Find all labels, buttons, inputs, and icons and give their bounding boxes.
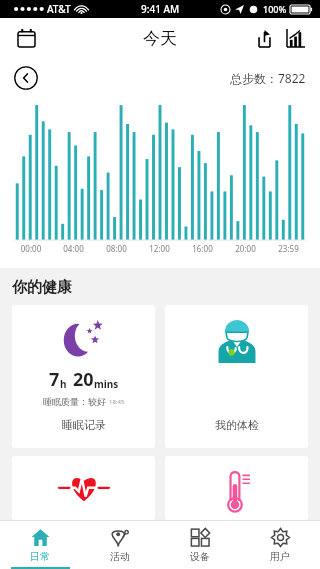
staticText: 睡眠质量：较好 <box>43 396 106 407</box>
button[interactable]: 用户 <box>240 521 320 569</box>
button[interactable]: 活动 <box>80 521 160 569</box>
staticText: 04:00 <box>52 243 95 254</box>
staticText: 活动 <box>110 550 130 563</box>
staticText: 16:00 <box>181 243 224 254</box>
staticText: 20 <box>73 367 94 392</box>
staticText: 00:00 <box>10 243 52 254</box>
staticText: 08:00 <box>95 243 138 254</box>
button[interactable]: 我的体检 <box>165 305 308 448</box>
staticText: 你的健康 <box>12 278 72 297</box>
staticText: AT&T <box>47 2 71 16</box>
staticText: 100% <box>263 3 287 15</box>
staticText: 睡眠记录 <box>62 418 106 432</box>
staticText: 7 <box>49 367 60 392</box>
staticText: 用户 <box>270 550 290 563</box>
button[interactable]: Statistics <box>280 22 312 54</box>
staticText: mins <box>94 377 119 391</box>
staticText: 总步数：7822 <box>230 70 306 86</box>
staticText: 今天 <box>143 28 177 49</box>
button[interactable]: Back <box>14 66 38 90</box>
button[interactable]: Share <box>248 22 280 54</box>
staticText: 我的体检 <box>215 418 259 432</box>
button[interactable]: 97-110 <box>165 456 308 520</box>
staticText: 23:59 <box>267 243 310 254</box>
staticText: 12:00 <box>138 243 181 254</box>
staticText: 9:41 AM <box>141 2 180 16</box>
staticText: 18:45 <box>109 398 125 406</box>
button[interactable]: 设备 <box>160 521 240 569</box>
button[interactable]: 7 <box>12 305 155 448</box>
button[interactable]: Calendar <box>10 22 42 54</box>
staticText: 20:00 <box>224 243 267 254</box>
staticText: h <box>60 377 67 391</box>
button[interactable]: 65-135 <box>12 456 155 520</box>
staticText: 日常 <box>30 550 50 563</box>
staticText: 设备 <box>190 550 210 563</box>
button[interactable]: 日常 <box>0 521 80 569</box>
